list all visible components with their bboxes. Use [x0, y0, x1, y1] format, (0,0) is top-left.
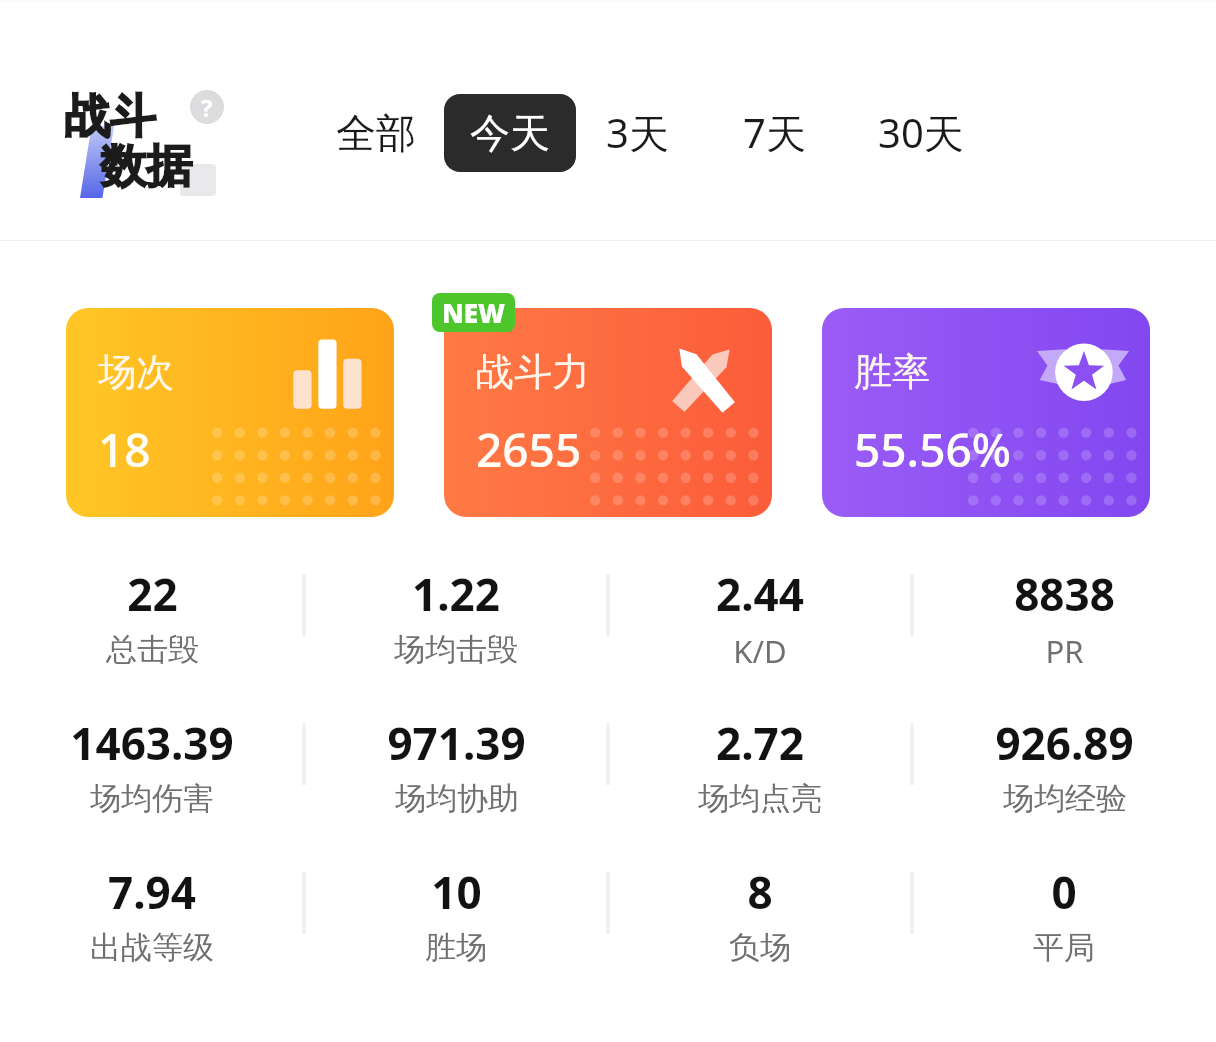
staticText: 胜场 [425, 928, 487, 962]
button[interactable]: 0 [912, 862, 1216, 962]
button[interactable]: 今天 [444, 94, 576, 172]
staticText: 30天 [878, 105, 964, 160]
button[interactable]: 971.39 [304, 713, 608, 813]
staticText: 战斗 [64, 88, 156, 146]
staticText: 7天 [743, 105, 806, 160]
staticText: 22 [127, 564, 178, 624]
staticText: 场均击毁 [394, 630, 518, 664]
button[interactable]: 7.94 [0, 862, 304, 962]
button[interactable]: 2.44 [608, 564, 912, 664]
staticText: 926.89 [995, 713, 1134, 773]
button[interactable]: 1.22 [304, 564, 608, 664]
staticText: 场均协助 [395, 779, 519, 813]
staticText: PR [1045, 630, 1084, 664]
staticText: 18 [98, 418, 151, 481]
staticText: 1.22 [412, 564, 500, 624]
staticText: K/D [733, 630, 787, 664]
staticText: ? [201, 91, 213, 124]
button[interactable]: 战斗数据 [62, 88, 242, 208]
button[interactable]: 胜率 [822, 308, 1150, 517]
staticText: 平局 [1033, 928, 1095, 962]
staticText: 2.44 [716, 564, 804, 624]
staticText: 胜率 [854, 348, 930, 396]
staticText: 7.94 [108, 862, 196, 922]
button[interactable]: 8838 [912, 564, 1216, 664]
staticText: 数据 [100, 138, 192, 196]
staticText: 战斗力 [476, 348, 590, 396]
button[interactable]: 2.72 [608, 713, 912, 813]
staticText: 场均点亮 [698, 779, 822, 813]
staticText: 场均经验 [1003, 779, 1127, 813]
staticText: 971.39 [387, 713, 526, 773]
staticText: 8838 [1014, 564, 1115, 624]
staticText: 出战等级 [90, 928, 214, 962]
staticText: 总击毁 [106, 630, 199, 664]
staticText: 负场 [729, 928, 791, 962]
staticText: 全部 [336, 108, 416, 158]
staticText: 0 [1051, 862, 1077, 922]
button[interactable]: 7天 [737, 91, 812, 174]
staticText: 1463.39 [70, 713, 234, 773]
button[interactable]: 8 [608, 862, 912, 962]
staticText: 8 [747, 862, 773, 922]
staticText: 3天 [606, 105, 669, 160]
staticText: 55.56% [854, 418, 1011, 481]
staticText: 场均伤害 [90, 779, 214, 813]
staticText: 场次 [98, 348, 174, 396]
staticText: 今天 [470, 108, 550, 158]
button[interactable]: 10 [304, 862, 608, 962]
staticText: 10 [431, 862, 482, 922]
staticText: 2655 [476, 418, 582, 481]
button[interactable]: 全部 [330, 94, 422, 172]
button[interactable]: 1463.39 [0, 713, 304, 813]
staticText: NEW [442, 295, 505, 330]
button[interactable]: 场次 [66, 308, 394, 517]
button[interactable]: 30天 [872, 91, 970, 174]
button[interactable]: 22 [0, 564, 304, 664]
button[interactable]: 3天 [600, 91, 675, 174]
staticText: 2.72 [716, 713, 804, 773]
button[interactable]: 926.89 [912, 713, 1216, 813]
button[interactable]: 战斗力 [444, 308, 772, 517]
